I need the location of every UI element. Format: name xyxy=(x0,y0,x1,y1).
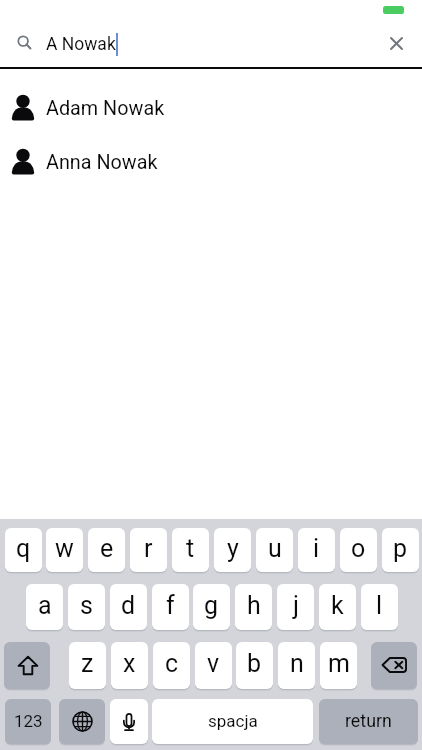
button[interactable]: k xyxy=(319,584,356,630)
button[interactable]: v xyxy=(195,642,232,689)
staticText: Adam Nowak xyxy=(46,97,165,120)
button[interactable]: n xyxy=(278,642,315,689)
button[interactable]: s xyxy=(68,584,105,630)
button[interactable]: p xyxy=(382,528,419,572)
staticText: d xyxy=(121,591,136,620)
button[interactable]: spacja xyxy=(152,699,313,744)
staticText: f xyxy=(166,591,175,620)
button[interactable]: a xyxy=(26,584,63,630)
button[interactable]: f xyxy=(152,584,189,630)
button[interactable]: y xyxy=(214,528,251,572)
button[interactable]: w xyxy=(46,528,83,572)
button[interactable]: g xyxy=(193,584,230,630)
button[interactable]: j xyxy=(277,584,314,630)
staticText: y xyxy=(227,534,239,563)
staticText: r xyxy=(144,534,153,563)
staticText: b xyxy=(247,649,262,678)
button[interactable]: c xyxy=(153,642,190,689)
staticText: c xyxy=(165,649,179,678)
button[interactable]: Voice input xyxy=(110,699,148,744)
staticText: m xyxy=(328,649,350,678)
button[interactable]: Search field xyxy=(0,22,372,67)
button[interactable]: b xyxy=(236,642,273,689)
staticText: x xyxy=(123,649,136,678)
staticText: return xyxy=(345,710,392,731)
button[interactable]: d xyxy=(110,584,147,630)
button[interactable]: i xyxy=(298,528,335,572)
staticText: e xyxy=(100,534,114,563)
button[interactable]: Change keyboard xyxy=(59,699,105,744)
button[interactable]: return xyxy=(319,699,418,744)
button[interactable]: Adam Nowak xyxy=(0,83,422,130)
button[interactable]: r xyxy=(130,528,167,572)
button[interactable]: Shift xyxy=(4,642,50,689)
staticText: t xyxy=(186,534,195,563)
staticText: l xyxy=(376,591,383,620)
button[interactable]: m xyxy=(320,642,357,689)
button[interactable]: e xyxy=(88,528,125,572)
staticText: p xyxy=(393,534,408,563)
button[interactable]: o xyxy=(340,528,377,572)
button[interactable]: Clear search xyxy=(380,27,412,59)
button[interactable]: x xyxy=(111,642,148,689)
staticText: v xyxy=(207,649,220,678)
staticText: o xyxy=(351,534,366,563)
staticText: s xyxy=(80,591,93,620)
button[interactable]: h xyxy=(235,584,272,630)
staticText: 123 xyxy=(14,711,43,731)
staticText: q xyxy=(16,534,31,563)
button[interactable]: Backspace xyxy=(371,642,417,689)
button[interactable]: l xyxy=(361,584,398,630)
button[interactable]: 123 xyxy=(5,699,51,744)
staticText: spacja xyxy=(208,711,258,731)
staticText: z xyxy=(81,649,94,678)
staticText: a xyxy=(38,591,52,620)
staticText: A Nowak xyxy=(46,34,116,55)
staticText: Anna Nowak xyxy=(46,151,158,174)
staticText: w xyxy=(55,534,74,563)
staticText: k xyxy=(331,591,344,620)
staticText: j xyxy=(293,591,299,620)
button[interactable]: t xyxy=(172,528,209,572)
staticText: u xyxy=(268,534,282,563)
staticText: i xyxy=(313,534,320,563)
staticText: g xyxy=(204,591,219,620)
staticText: h xyxy=(247,591,261,620)
button[interactable]: Anna Nowak xyxy=(0,137,422,184)
button[interactable]: q xyxy=(5,528,42,572)
staticText: n xyxy=(290,649,304,678)
button[interactable]: u xyxy=(256,528,293,572)
button[interactable]: z xyxy=(69,642,106,689)
